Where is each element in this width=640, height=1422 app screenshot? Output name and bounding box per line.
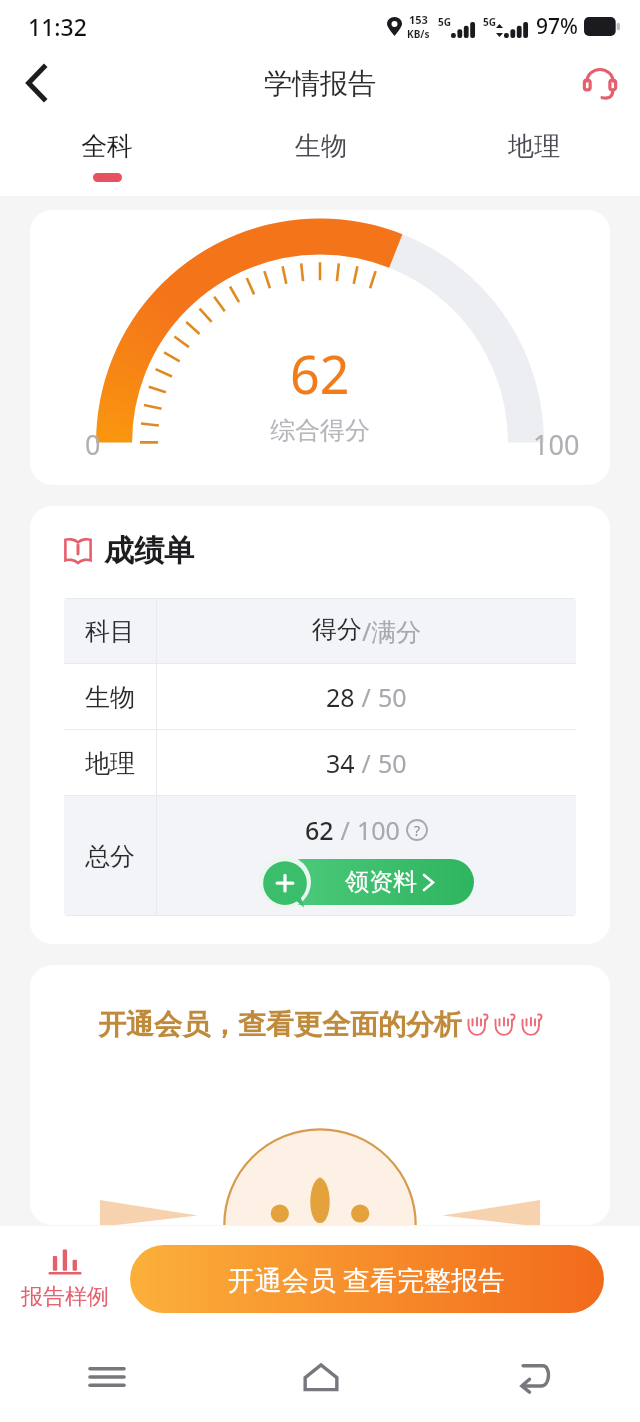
- staticText: 全科: [81, 130, 133, 163]
- staticText: 综合得分: [270, 415, 370, 446]
- staticText: 科目: [85, 616, 135, 647]
- staticText: /满分: [362, 614, 422, 648]
- staticText: 地理: [508, 130, 560, 163]
- staticText: 100: [357, 813, 400, 847]
- button[interactable]: 全科: [0, 114, 214, 196]
- button[interactable]: 领资料: [259, 859, 474, 905]
- staticText: 153: [409, 12, 428, 27]
- button[interactable]: Back: [427, 1332, 640, 1422]
- staticText: 62: [290, 338, 350, 409]
- staticText: /: [355, 680, 378, 714]
- staticText: 报告样例: [21, 1283, 109, 1311]
- staticText: 学情报告: [264, 66, 376, 101]
- staticText: 领资料: [345, 867, 417, 897]
- staticText: ?: [414, 821, 421, 840]
- button[interactable]: Recent apps: [0, 1332, 214, 1422]
- staticText: 97%: [536, 12, 578, 41]
- staticText: 5G: [438, 15, 451, 29]
- staticText: /: [334, 813, 357, 847]
- staticText: 50: [378, 746, 407, 780]
- staticText: /: [355, 746, 378, 780]
- staticText: 总分: [85, 841, 135, 872]
- button[interactable]: 生物: [214, 114, 427, 196]
- staticText: 生物: [85, 682, 135, 713]
- staticText: 28: [326, 680, 355, 714]
- staticText: 100: [533, 426, 580, 463]
- button[interactable]: Customer service: [574, 57, 626, 109]
- button[interactable]: Back: [10, 56, 64, 110]
- staticText: 62: [305, 813, 334, 847]
- staticText: 得分: [312, 614, 362, 645]
- staticText: KB/s: [407, 27, 430, 41]
- staticText: 生物: [295, 130, 347, 163]
- button[interactable]: Home: [214, 1332, 427, 1422]
- staticText: 开通会员，查看更全面的分析: [98, 1007, 462, 1042]
- button[interactable]: Help: [406, 819, 428, 841]
- button[interactable]: 报告样例: [0, 1226, 130, 1332]
- staticText: 成绩单: [104, 532, 194, 570]
- staticText: 11:32: [28, 11, 87, 42]
- staticText: 5G: [483, 15, 496, 29]
- staticText: 34: [326, 746, 355, 780]
- staticText: 50: [378, 680, 407, 714]
- staticText: 开通会员 查看完整报告: [228, 1261, 506, 1298]
- button[interactable]: 开通会员 查看完整报告: [130, 1245, 604, 1313]
- button[interactable]: 地理: [427, 114, 640, 196]
- staticText: 0: [85, 426, 101, 463]
- staticText: 地理: [85, 748, 135, 779]
